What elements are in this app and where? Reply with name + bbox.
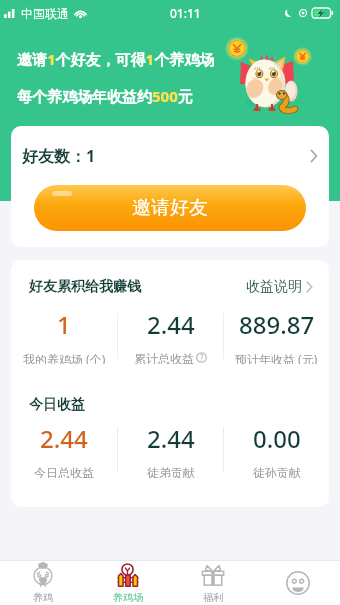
staticText: 1: [57, 308, 71, 341]
staticText: 好友累积给我赚钱: [29, 278, 141, 296]
button[interactable]: 我的: [255, 561, 340, 605]
staticText: 2.44: [147, 422, 195, 455]
button[interactable]: 福利: [170, 561, 255, 605]
staticText: 徒孙贡献: [253, 465, 301, 478]
staticText: ?: [200, 352, 204, 363]
staticText: 今日总收益: [34, 465, 94, 478]
staticText: 累计总收益: [134, 351, 194, 364]
staticText: 邀请好友: [132, 196, 208, 220]
staticText: 邀请1个好友，可得1个养鸡场: [17, 49, 215, 69]
staticText: 好友数：1: [22, 145, 96, 167]
staticText: 01:11: [170, 5, 201, 21]
staticText: 2.44: [147, 308, 195, 341]
staticText: 今日收益: [29, 396, 85, 414]
staticText: 我的养鸡场 (个): [23, 351, 106, 364]
staticText: 每个养鸡场年收益约500元: [17, 86, 193, 106]
staticText: 889.87: [239, 308, 315, 341]
staticText: 中国联通: [21, 6, 69, 21]
staticText: 2.44: [40, 422, 88, 455]
staticText: 福利: [203, 591, 223, 604]
button[interactable]: 养鸡场: [85, 561, 170, 605]
staticText: 收益说明: [246, 278, 302, 296]
staticText: 徒弟贡献: [147, 465, 195, 478]
button[interactable]: 好友数：1: [11, 126, 329, 185]
button[interactable]: 养鸡: [0, 561, 85, 605]
button[interactable]: 邀请好友: [34, 185, 306, 231]
staticText: 预计年收益 (元): [235, 351, 318, 364]
button[interactable]: 收益说明: [246, 278, 313, 296]
staticText: 养鸡场: [113, 591, 143, 604]
staticText: 养鸡: [33, 591, 53, 604]
staticText: 0.00: [253, 422, 301, 455]
